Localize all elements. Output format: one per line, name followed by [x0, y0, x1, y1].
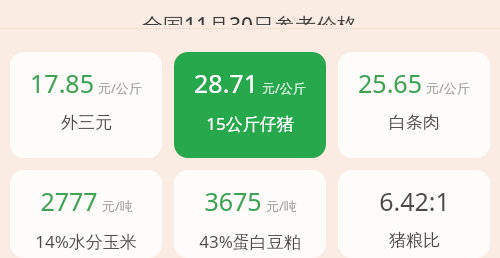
staticText: 14%水分玉米	[35, 230, 137, 253]
staticText: 2777	[40, 184, 98, 218]
staticText: 6.42:1	[379, 184, 450, 218]
staticText: 15公斤仔猪	[206, 112, 294, 135]
staticText: 3675	[204, 184, 262, 218]
button[interactable]: 25.65	[338, 52, 490, 158]
staticText: 外三元	[61, 112, 112, 133]
staticText: 28.71	[194, 66, 258, 100]
staticText: 元/吨	[102, 197, 133, 215]
button[interactable]: 6.42:1	[338, 170, 490, 258]
button[interactable]: 28.71	[174, 52, 326, 158]
staticText: 全国11月30日参考价格	[142, 11, 359, 25]
staticText: 白条肉	[389, 112, 440, 133]
staticText: 17.85	[30, 66, 94, 100]
button[interactable]: 17.85	[10, 52, 162, 158]
staticText: 元/吨	[266, 197, 297, 215]
staticText: 元/公斤	[98, 79, 142, 97]
button[interactable]: 2777	[10, 170, 162, 258]
staticText: 43%蛋白豆粕	[199, 230, 301, 253]
staticText: 元/公斤	[426, 79, 470, 97]
staticText: 元/公斤	[262, 79, 306, 97]
staticText: 25.65	[358, 66, 422, 100]
button[interactable]: 3675	[174, 170, 326, 258]
staticText: 猪粮比	[389, 230, 440, 251]
